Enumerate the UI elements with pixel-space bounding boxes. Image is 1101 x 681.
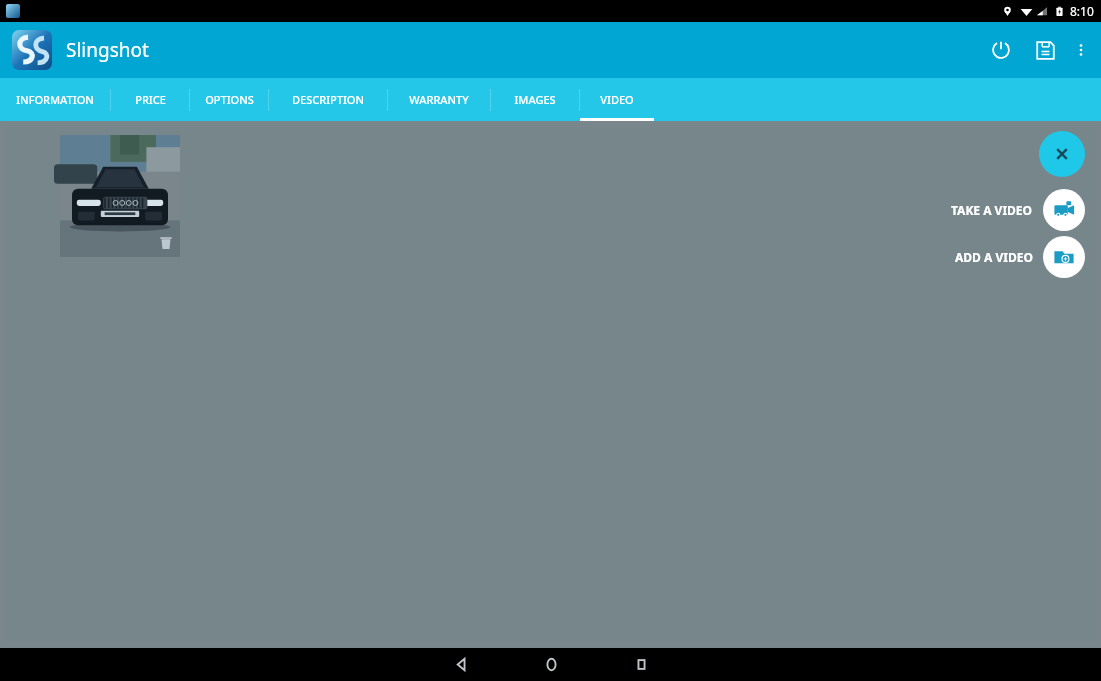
staticText: DESCRIPTION <box>292 92 364 107</box>
staticText: VIDEO <box>600 92 634 107</box>
button[interactable]: TAKE A VIDEO <box>951 189 1085 231</box>
button[interactable]: Save <box>1023 28 1067 72</box>
button[interactable]: OPTIONS <box>190 78 268 121</box>
staticText: ADD A VIDEO <box>955 249 1033 265</box>
button[interactable]: IMAGES <box>491 78 579 121</box>
button[interactable]: ADD A VIDEO <box>955 236 1085 278</box>
staticText: IMAGES <box>514 92 556 107</box>
staticText: Slingshot <box>66 37 149 63</box>
button[interactable]: INFORMATION <box>0 78 110 121</box>
button[interactable]: Delete video <box>60 135 180 257</box>
button[interactable]: VIDEO <box>580 78 654 121</box>
staticText: 8:10 <box>1070 3 1094 19</box>
staticText: INFORMATION <box>16 92 94 107</box>
button[interactable]: WARRANTY <box>388 78 490 121</box>
staticText: TAKE A VIDEO <box>951 202 1033 218</box>
staticText: WARRANTY <box>409 92 469 107</box>
button[interactable]: Back <box>416 648 506 681</box>
button[interactable]: Home <box>506 648 596 681</box>
button[interactable]: Close menu <box>1039 131 1085 177</box>
button[interactable]: More options <box>1067 28 1095 72</box>
button[interactable]: Recent apps <box>596 648 686 681</box>
button[interactable]: Power <box>979 28 1023 72</box>
button[interactable]: Delete video <box>156 233 176 253</box>
button[interactable]: PRICE <box>111 78 189 121</box>
button[interactable]: DESCRIPTION <box>269 78 387 121</box>
staticText: PRICE <box>135 92 166 107</box>
staticText: OPTIONS <box>205 92 254 107</box>
